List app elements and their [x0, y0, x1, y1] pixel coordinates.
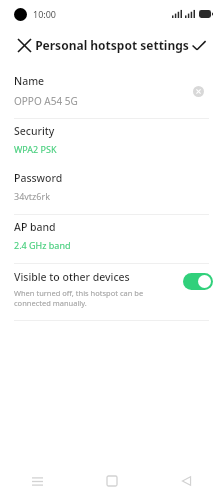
- button[interactable]: Recent apps: [0, 466, 75, 496]
- button[interactable]: Clear name: [187, 80, 209, 102]
- button[interactable]: Close: [8, 29, 40, 61]
- button[interactable]: Visible to other devices: [0, 264, 223, 312]
- button[interactable]: Visible to other devices toggle: [183, 273, 213, 290]
- staticText: Security: [14, 124, 55, 138]
- button[interactable]: Home: [75, 466, 149, 496]
- staticText: 34vtz6rk: [14, 190, 51, 202]
- button[interactable]: Password: [0, 166, 223, 207]
- staticText: When turned off, this hotspot can be con…: [14, 288, 177, 308]
- button[interactable]: Security: [0, 119, 223, 160]
- staticText: 10:00: [33, 8, 57, 20]
- staticText: Name: [14, 74, 45, 88]
- button[interactable]: AP band: [0, 215, 223, 256]
- button[interactable]: Back: [149, 466, 223, 496]
- staticText: OPPO A54 5G: [14, 94, 78, 108]
- button[interactable]: Confirm: [183, 29, 215, 61]
- staticText: 2.4 GHz band: [14, 239, 71, 251]
- staticText: WPA2 PSK: [14, 143, 57, 155]
- staticText: Visible to other devices: [14, 270, 130, 284]
- button[interactable]: Name: [0, 70, 223, 112]
- staticText: AP band: [14, 220, 56, 234]
- staticText: Password: [14, 171, 63, 185]
- staticText: Personal hotspot settings: [35, 37, 189, 53]
